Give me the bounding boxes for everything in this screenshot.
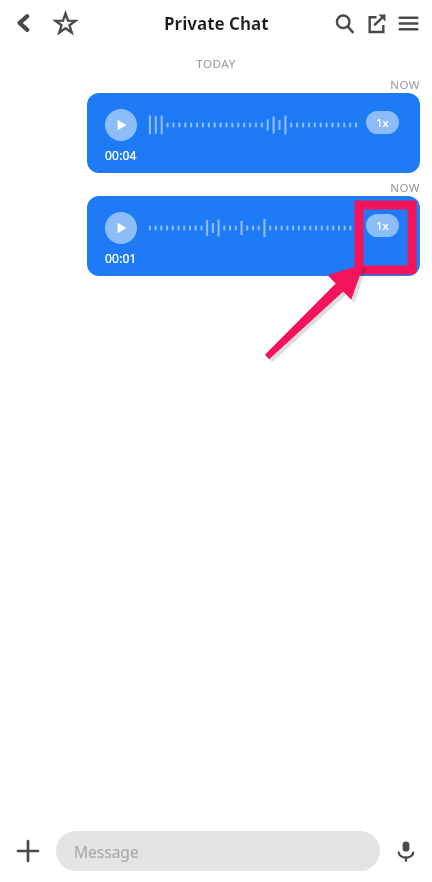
staticText: NOW [0,77,420,93]
button[interactable]: Back [8,0,40,46]
button[interactable]: Menu [392,0,424,46]
button[interactable]: Play [105,109,137,141]
button[interactable]: Search [328,0,360,46]
button[interactable]: 1x [366,214,399,237]
staticText: TODAY [0,56,432,72]
button[interactable]: Play [87,93,420,173]
staticText: 1x [376,115,389,131]
staticText: Message [74,841,139,862]
button[interactable]: Message [56,831,380,871]
button[interactable]: Favourite [48,0,82,46]
staticText: NOW [0,180,420,196]
staticText: Private Chat [164,12,269,35]
button[interactable]: Record voice message [380,823,432,879]
staticText: 00:04 [105,147,137,163]
button[interactable]: 1x [366,111,399,134]
button[interactable]: Play [87,196,420,276]
button[interactable]: Play [105,212,137,244]
staticText: 00:01 [105,250,137,266]
button[interactable]: Share [360,0,392,46]
staticText: 1x [376,218,389,234]
button[interactable]: Add attachment [0,823,56,879]
